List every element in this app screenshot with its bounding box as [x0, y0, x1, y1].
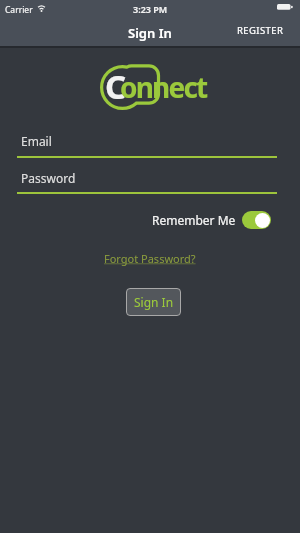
staticText: Carrier [5, 4, 33, 16]
staticText: Sign In [134, 294, 174, 310]
staticText: Email [21, 133, 52, 149]
staticText: Sign In [128, 24, 172, 42]
staticText: 3:23 PM [133, 3, 168, 15]
button[interactable]: Sign In [126, 288, 181, 316]
staticText: C [105, 64, 127, 109]
staticText: onnect [120, 68, 207, 106]
button[interactable]: REGISTER [237, 24, 284, 37]
button[interactable]: Forgot Password? [104, 251, 196, 266]
staticText: Password [21, 170, 76, 186]
staticText: Remember Me [152, 212, 236, 228]
button[interactable]: Remember Me [152, 211, 271, 229]
staticText: Forgot Password? [104, 251, 196, 266]
staticText: REGISTER [237, 24, 284, 37]
